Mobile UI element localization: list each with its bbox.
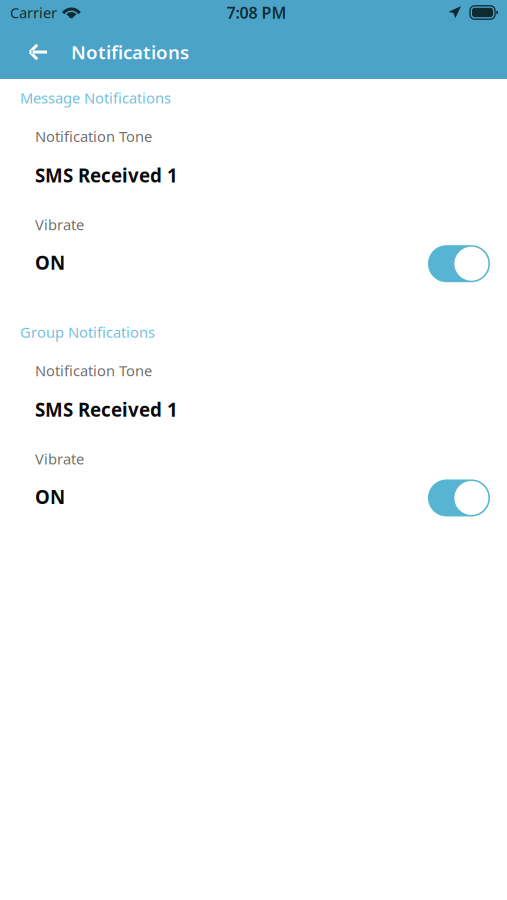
button[interactable]: Notification Tone — [0, 361, 507, 422]
staticText: ON — [35, 484, 65, 509]
button[interactable]: Notification Tone — [0, 126, 507, 188]
staticText: 7:08 PM — [226, 2, 286, 23]
staticText: Message Notifications — [20, 88, 171, 107]
button[interactable]: Vibrate, on — [428, 479, 490, 516]
staticText: Notifications — [71, 40, 189, 64]
staticText: Carrier — [10, 3, 57, 22]
button[interactable]: Back — [0, 39, 71, 65]
button[interactable]: Vibrate, on — [428, 245, 490, 282]
staticText: SMS Received 1 — [35, 163, 178, 188]
staticText: ON — [35, 250, 65, 275]
staticText: Vibrate — [35, 215, 84, 234]
staticText: Notification Tone — [35, 361, 152, 380]
staticText: Vibrate — [35, 449, 84, 468]
staticText: SMS Received 1 — [35, 397, 178, 422]
staticText: Notification Tone — [35, 126, 152, 146]
staticText: Group Notifications — [20, 322, 155, 342]
